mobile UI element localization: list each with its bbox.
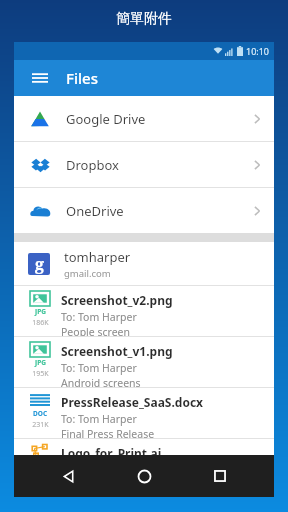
- staticText: 186K: [32, 318, 49, 328]
- staticText: Android screens: [61, 376, 141, 387]
- button[interactable]: Google Drive: [14, 96, 274, 141]
- button[interactable]: DOC: [14, 388, 274, 438]
- button[interactable]: Back: [46, 455, 90, 497]
- staticText: 231K: [32, 420, 49, 430]
- staticText: To: Tom Harper: [61, 310, 137, 324]
- button[interactable]: AI: [14, 439, 274, 489]
- staticText: PressRelease_SaaS.docx: [61, 394, 204, 410]
- staticText: Final Press Release: [61, 427, 155, 438]
- button[interactable]: Open navigation menu: [28, 66, 52, 90]
- staticText: Logo_for_Print.ai: [61, 445, 162, 461]
- staticText: Screenshot_v2.png: [61, 292, 173, 308]
- button[interactable]: g: [14, 242, 274, 285]
- button[interactable]: JPG: [14, 286, 274, 336]
- staticText: 195K: [32, 369, 49, 379]
- staticText: To: Tom Harper: [61, 412, 137, 426]
- button[interactable]: JPG: [14, 337, 274, 387]
- button[interactable]: Dropbox: [14, 142, 274, 187]
- button[interactable]: Home: [122, 455, 166, 497]
- staticText: g: [35, 253, 44, 275]
- staticText: To: Tom Harper: [61, 361, 137, 375]
- staticText: 簡單附件: [116, 10, 172, 28]
- staticText: gmail.com: [64, 267, 111, 280]
- staticText: JPG: [35, 307, 46, 316]
- staticText: Google Drive: [66, 110, 250, 128]
- staticText: To: Tom Harper: [61, 463, 137, 477]
- staticText: Screenshot_v1.png: [61, 343, 173, 359]
- staticText: DOC: [33, 409, 48, 418]
- staticText: OneDrive: [66, 202, 250, 220]
- staticText: Files: [66, 68, 98, 88]
- staticText: JPG: [35, 358, 46, 367]
- staticText: People screen: [61, 325, 130, 336]
- staticText: 10:10: [246, 45, 270, 57]
- button[interactable]: Recent apps: [198, 455, 242, 497]
- staticText: tomharper: [64, 248, 131, 266]
- button[interactable]: OneDrive: [14, 188, 274, 233]
- staticText: Dropbox: [66, 156, 250, 174]
